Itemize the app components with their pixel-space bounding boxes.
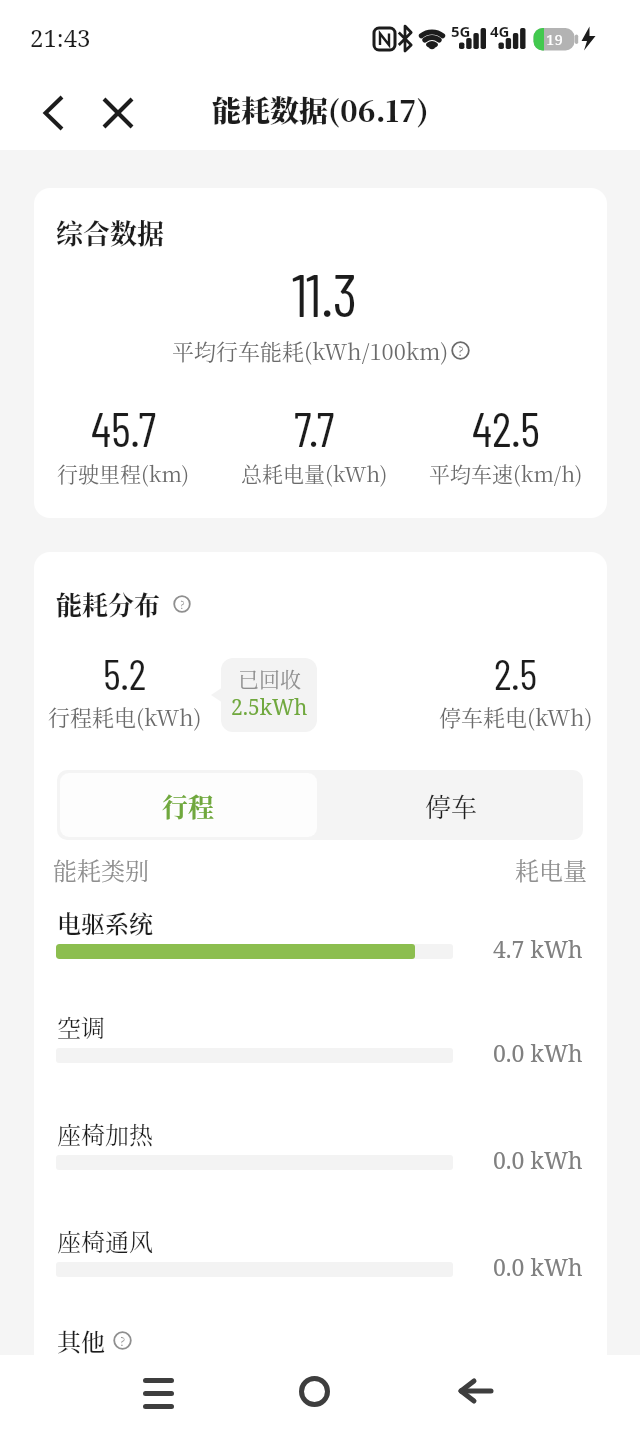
staticText: 5.2 bbox=[103, 647, 147, 699]
staticText: 平均行车能耗(kWh/100km) bbox=[172, 335, 449, 365]
button[interactable]: ? bbox=[113, 1331, 132, 1350]
staticText: ? bbox=[458, 341, 464, 360]
button[interactable] bbox=[30, 90, 76, 136]
staticText: 座椅通风 bbox=[57, 1223, 153, 1257]
button[interactable]: ? bbox=[173, 595, 191, 613]
staticText: 11.3 bbox=[292, 257, 358, 329]
staticText: 0.0 kWh bbox=[493, 1144, 583, 1175]
staticText: 行程 bbox=[162, 787, 215, 824]
staticText: 空调 bbox=[57, 1009, 105, 1043]
staticText: 42.5 bbox=[472, 399, 540, 457]
staticText: 能耗类别 bbox=[53, 852, 149, 886]
staticText: 座椅加热 bbox=[57, 1116, 153, 1150]
button[interactable]: 行程 bbox=[60, 773, 317, 837]
staticText: 停车 bbox=[425, 787, 478, 824]
button[interactable]: 停车 bbox=[320, 770, 583, 840]
staticText: ? bbox=[120, 1332, 126, 1349]
staticText: 2.5kWh bbox=[231, 693, 308, 722]
button[interactable] bbox=[134, 1367, 182, 1419]
staticText: 4.7 kWh bbox=[493, 933, 583, 964]
staticText: 5G bbox=[451, 21, 471, 41]
staticText: 耗电量 bbox=[515, 852, 587, 886]
staticText: 0.0 kWh bbox=[493, 1251, 583, 1282]
staticText: 21:43 bbox=[30, 21, 91, 54]
staticText: ? bbox=[180, 596, 185, 612]
staticText: 行程耗电(kWh) bbox=[48, 701, 202, 733]
staticText: 0.0 kWh bbox=[493, 1037, 583, 1068]
staticText: 19 bbox=[546, 29, 563, 49]
staticText: 其他 bbox=[57, 1323, 105, 1357]
staticText: 行驶里程(km) bbox=[57, 458, 190, 488]
staticText: 停车耗电(kWh) bbox=[439, 701, 593, 733]
staticText: 4G bbox=[490, 21, 510, 41]
staticText: 能耗数据(06.17) bbox=[212, 89, 429, 131]
staticText: 7.7 bbox=[294, 399, 335, 457]
staticText: 2.5 bbox=[494, 647, 538, 699]
button[interactable] bbox=[452, 1365, 500, 1417]
button[interactable] bbox=[95, 90, 141, 136]
button[interactable] bbox=[290, 1365, 338, 1417]
staticText: 平均车速(km/h) bbox=[429, 458, 583, 488]
button[interactable]: ? bbox=[451, 341, 470, 360]
staticText: 电驱系统 bbox=[57, 905, 153, 939]
staticText: 总耗电量(kWh) bbox=[241, 458, 388, 488]
staticText: 能耗分布 bbox=[56, 585, 161, 622]
staticText: 综合数据 bbox=[56, 213, 164, 252]
staticText: 已回收 bbox=[238, 663, 301, 693]
staticText: 45.7 bbox=[91, 399, 156, 457]
